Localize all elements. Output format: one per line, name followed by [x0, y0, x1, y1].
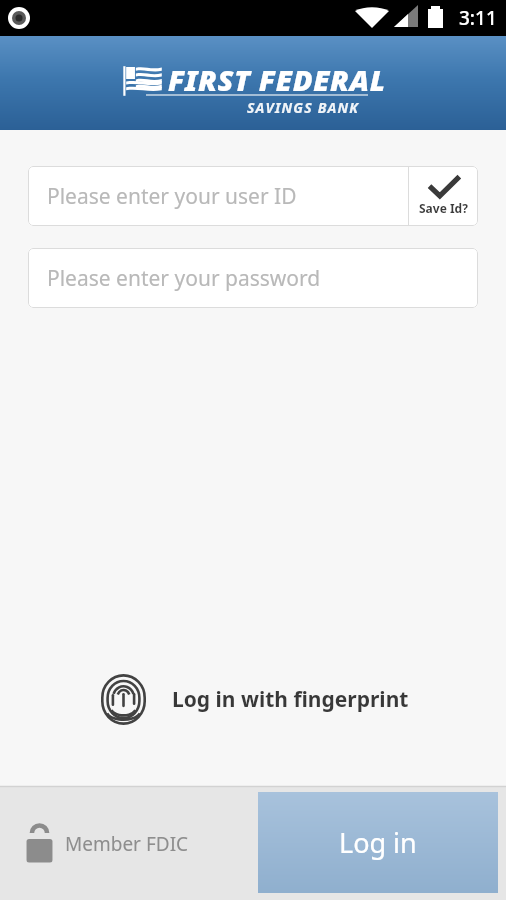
button[interactable]: Please enter your password [28, 248, 478, 308]
button[interactable]: Save Id [409, 166, 478, 226]
staticText: FIRST FEDERAL [168, 60, 386, 99]
button[interactable]: Log in [258, 792, 498, 893]
staticText: Please enter your user ID [47, 182, 297, 211]
staticText: Please enter your password [47, 264, 321, 293]
staticText: SAVINGS BANK [247, 98, 360, 117]
staticText: Member FDIC [65, 831, 189, 857]
staticText: Log in [339, 824, 417, 861]
staticText: Log in with fingerprint [172, 685, 409, 714]
staticText: 3:11 [459, 5, 497, 31]
staticText: Save Id? [419, 200, 468, 216]
button[interactable]: Member FDIC [26, 821, 189, 866]
button[interactable]: Please enter your user ID [28, 166, 408, 226]
button[interactable]: Fingerprint [97, 673, 409, 726]
other: Fingerprint [97, 673, 150, 726]
